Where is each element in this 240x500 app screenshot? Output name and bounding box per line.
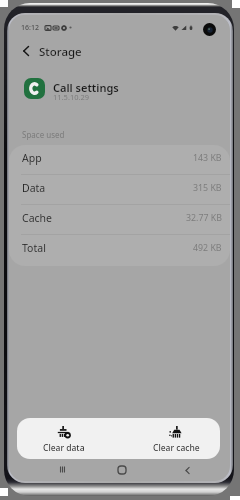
staticText: 16:12	[21, 23, 39, 33]
button[interactable]: Back	[181, 464, 193, 476]
staticText: 315 KB	[193, 182, 222, 194]
button[interactable]: Back	[14, 39, 38, 63]
staticText: 143 KB	[193, 152, 222, 164]
staticText: 32.77 KB	[186, 212, 222, 224]
button[interactable]: Clear data	[17, 418, 110, 459]
button[interactable]: Recents	[57, 464, 68, 475]
button[interactable]: App	[9, 145, 230, 175]
button[interactable]: Home	[116, 464, 128, 476]
staticText: App	[22, 151, 42, 165]
staticText: 11.5.10.29	[53, 92, 90, 102]
button[interactable]: Data	[9, 175, 230, 205]
staticText: Clear cache	[153, 442, 200, 454]
staticText: Storage	[39, 44, 82, 60]
staticText: Data	[22, 181, 46, 195]
button[interactable]: Cache	[9, 205, 230, 235]
staticText: Clear data	[43, 442, 85, 454]
staticText: Call settings	[53, 80, 119, 95]
staticText: Cache	[22, 211, 52, 225]
button[interactable]: Total	[9, 235, 230, 265]
button[interactable]: Clear cache	[130, 418, 220, 459]
staticText: Total	[22, 241, 46, 255]
staticText: Space used	[22, 129, 65, 140]
staticText: 492 KB	[193, 242, 222, 254]
